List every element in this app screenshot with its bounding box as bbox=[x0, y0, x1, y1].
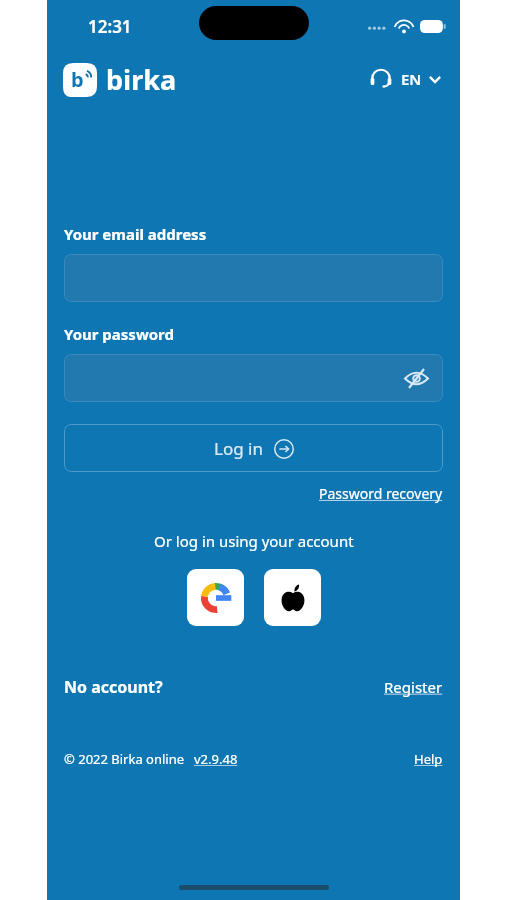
button[interactable]: Show password bbox=[404, 369, 429, 388]
staticText: Log in bbox=[214, 437, 263, 460]
staticText: © 2022 Birka online bbox=[64, 750, 185, 768]
button[interactable]: Password recovery bbox=[319, 484, 443, 503]
button[interactable]: v2.9.48 bbox=[194, 750, 238, 768]
button[interactable]: Sign in with Apple bbox=[264, 569, 321, 626]
staticText: birka bbox=[106, 61, 177, 98]
button[interactable]: Show password bbox=[64, 354, 443, 402]
button[interactable] bbox=[64, 254, 443, 302]
button[interactable]: Sign in with Google bbox=[187, 569, 244, 626]
staticText: Your password bbox=[64, 324, 174, 344]
button[interactable]: Register bbox=[384, 677, 443, 697]
button[interactable]: Help bbox=[414, 750, 443, 768]
staticText: Your email address bbox=[64, 224, 207, 244]
staticText: b bbox=[71, 66, 84, 93]
button[interactable]: Log in bbox=[64, 424, 443, 472]
button[interactable]: Support bbox=[368, 64, 444, 94]
staticText: Or log in using your account bbox=[154, 531, 354, 551]
staticText: No account? bbox=[64, 676, 163, 698]
staticText: EN bbox=[401, 69, 422, 89]
staticText: 12:31 bbox=[88, 15, 132, 38]
other: Support bbox=[370, 68, 392, 90]
button[interactable]: b bbox=[63, 61, 177, 98]
